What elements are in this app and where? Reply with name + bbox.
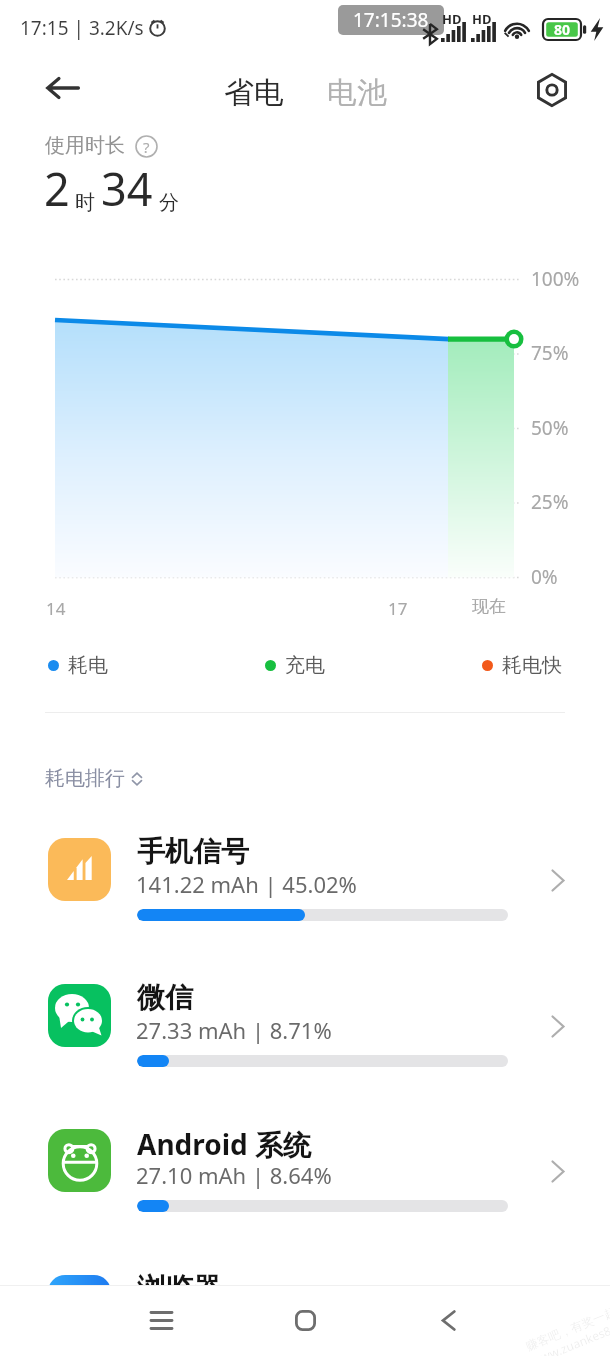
staticText: 27.33 mAh | 8.71%: [136, 1015, 332, 1045]
staticText: 时: [75, 190, 95, 215]
staticText: 充电: [285, 653, 325, 678]
staticText: 75%: [531, 340, 569, 366]
staticText: 80: [554, 20, 571, 39]
staticText: HD: [442, 10, 462, 28]
staticText: 电池: [327, 74, 387, 112]
staticText: 50%: [531, 415, 569, 441]
staticText: 手机信号: [137, 834, 249, 869]
staticText: 赚客吧，有奖一起赚！: [524, 1295, 610, 1354]
staticText: 25%: [531, 489, 569, 515]
staticText: 2: [44, 158, 70, 219]
staticText: 耗电快: [502, 653, 562, 678]
button[interactable]: 浏览器: [30, 1253, 580, 1356]
staticText: 34: [101, 158, 153, 219]
staticText: www.zuankes8.com: [529, 1312, 610, 1356]
button[interactable]: Back: [39, 64, 87, 112]
button[interactable]: 省电: [216, 68, 292, 118]
button[interactable]: Android 系统: [30, 1107, 580, 1215]
staticText: 现在: [472, 596, 506, 617]
staticText: 使用时长: [45, 133, 125, 158]
staticText: 27.10 mAh | 8.64%: [136, 1160, 332, 1190]
button[interactable]: Home: [269, 1285, 341, 1356]
staticText: 省电: [224, 74, 284, 112]
button[interactable]: Settings: [528, 66, 576, 114]
staticText: Android 系统: [137, 1125, 312, 1163]
staticText: 浏览器: [137, 1271, 221, 1306]
staticText: 0%: [531, 564, 558, 590]
staticText: 微信: [137, 980, 193, 1015]
button[interactable]: Help: [135, 135, 158, 158]
staticText: 分: [159, 190, 179, 215]
button[interactable]: 手机信号: [30, 816, 580, 924]
button[interactable]: 电池: [319, 68, 395, 118]
button[interactable]: Back: [412, 1285, 484, 1356]
staticText: 17:15 | 3.2K/s: [20, 15, 144, 41]
staticText: ?: [143, 137, 150, 157]
staticText: 耗电排行: [45, 766, 125, 791]
staticText: 141.22 mAh | 45.02%: [136, 869, 357, 899]
button[interactable]: 微信: [30, 962, 580, 1070]
staticText: 17: [388, 597, 408, 620]
staticText: 耗电: [68, 653, 108, 678]
staticText: 100%: [531, 266, 580, 292]
button[interactable]: 耗电排行: [45, 764, 144, 793]
staticText: 17:15:38: [353, 7, 429, 33]
staticText: 14: [46, 597, 66, 620]
staticText: HD: [472, 10, 492, 28]
button[interactable]: Recent apps: [125, 1285, 197, 1356]
